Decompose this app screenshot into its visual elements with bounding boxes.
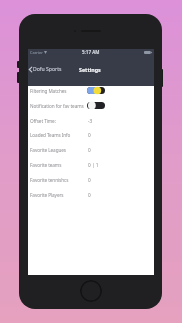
staticText: Notification for fav teams	[30, 103, 84, 109]
button[interactable]: Favorite teams	[28, 157, 154, 172]
button[interactable]: Favorite tennishcs	[28, 172, 154, 187]
staticText: Favorite teams	[30, 162, 62, 168]
button[interactable]: Favorite Players	[28, 187, 154, 202]
staticText: Loaded Teams Info	[30, 132, 71, 138]
staticText: 0 | 1	[88, 162, 99, 168]
button[interactable]: Dofu Sports	[28, 64, 65, 74]
staticText: Favorite tennishcs	[30, 177, 69, 183]
staticText: Favorite Leagues	[30, 147, 66, 153]
staticText: Offset Time:	[30, 118, 56, 124]
button[interactable]: Notification for fav teams	[28, 98, 154, 113]
staticText: Dofu Sports	[33, 66, 62, 72]
button[interactable]: Favorite Leagues	[28, 142, 154, 157]
staticText: Favorite Players	[30, 192, 64, 198]
staticText: Filtering Matches	[30, 88, 67, 94]
staticText: 5:17 AM	[82, 49, 100, 55]
button[interactable]: Offset Time:	[28, 113, 154, 128]
button[interactable]: Filtering Matches	[28, 83, 154, 98]
button[interactable]: Switch off	[87, 98, 105, 113]
staticText: 0	[88, 132, 91, 138]
staticText: 0	[88, 177, 91, 183]
button[interactable]: Loaded Teams Info	[28, 127, 154, 142]
staticText: Settings	[79, 66, 101, 73]
staticText: -3	[88, 118, 93, 124]
button[interactable]: Home	[80, 280, 102, 302]
staticText: 0	[88, 192, 91, 198]
staticText: 0	[88, 147, 91, 153]
button[interactable]: Switch on	[87, 83, 105, 98]
staticText: Carrier	[30, 50, 43, 55]
